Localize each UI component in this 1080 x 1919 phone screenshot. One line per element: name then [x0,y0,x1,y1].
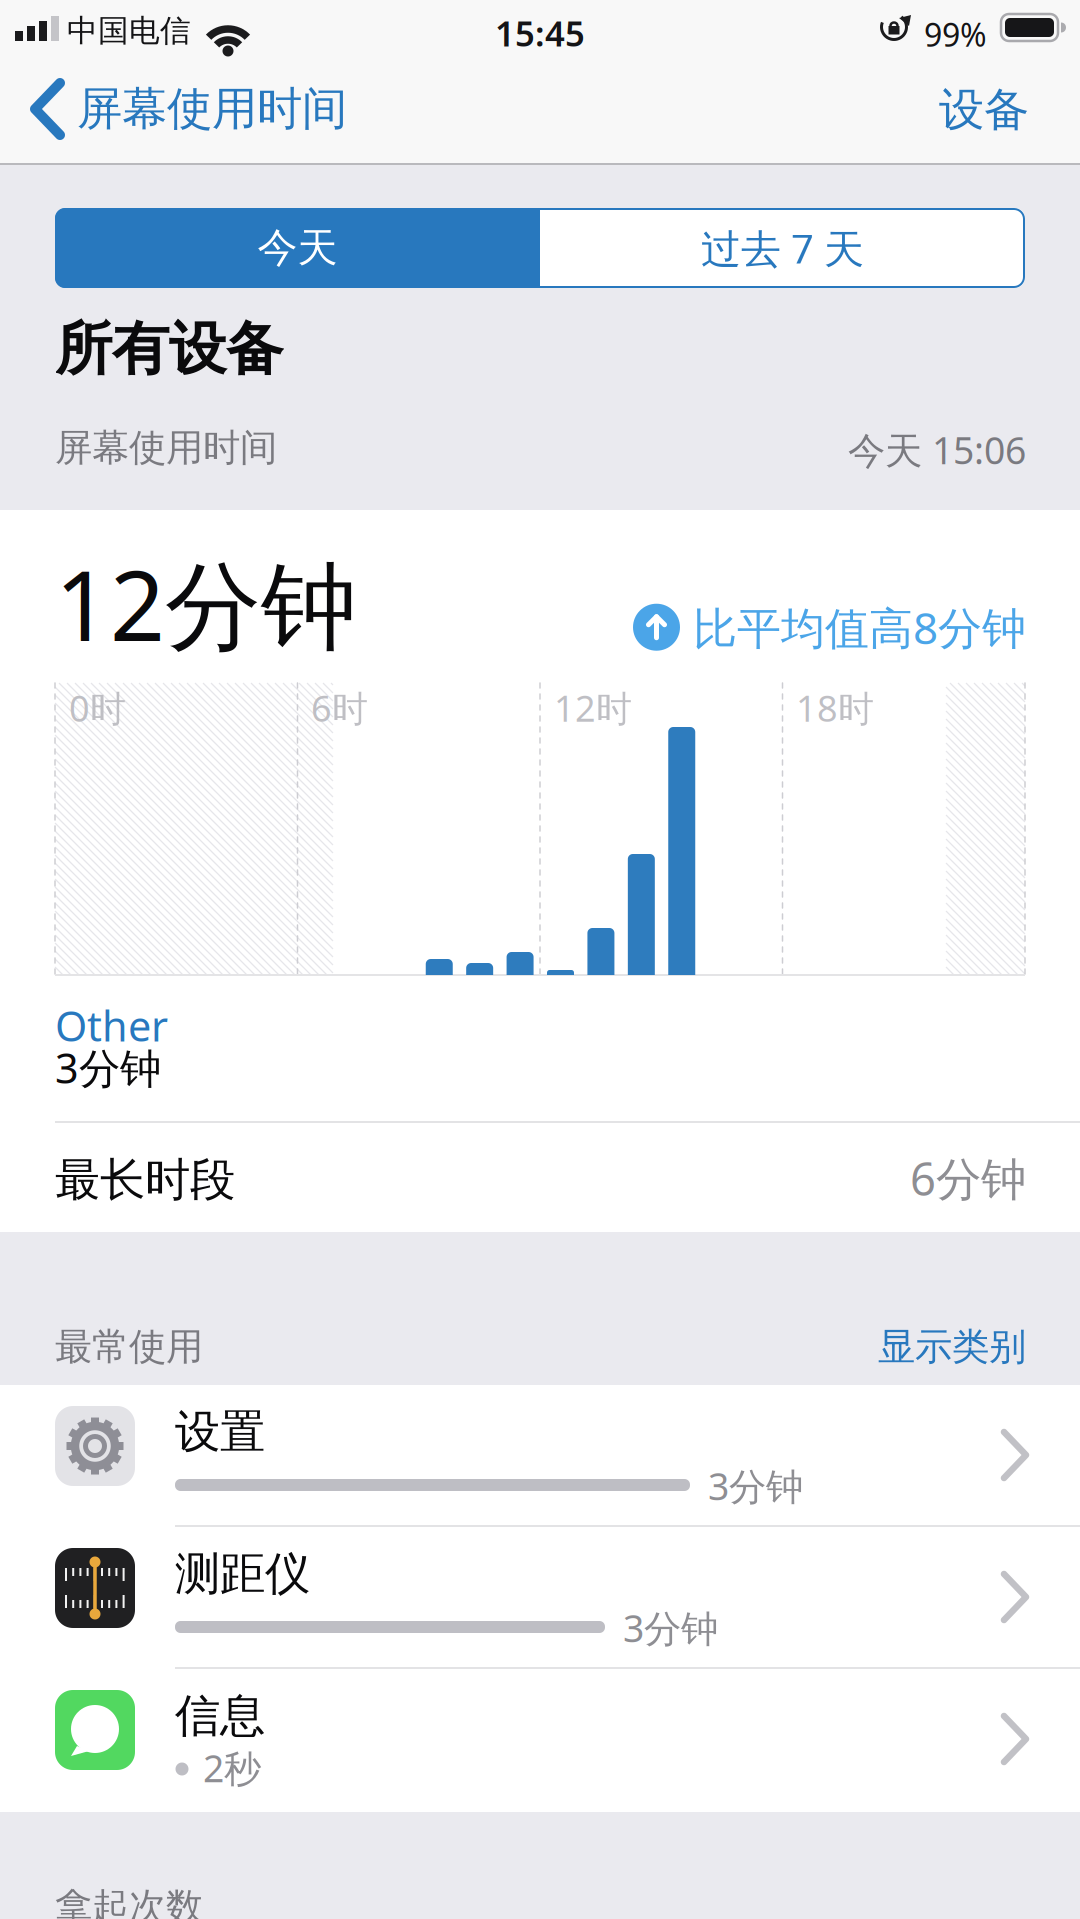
staticText: 比平均值高8分钟 [693,598,1026,656]
staticText: 2秒 [203,1743,261,1793]
staticText: Other [55,998,168,1053]
staticText: 过去 7 天 [701,221,864,274]
staticText: 99% [924,13,987,55]
staticText: 测距仪 [175,1546,310,1602]
button[interactable]: 返回屏幕使用时间 [0,62,317,124]
button[interactable]: 测距仪 [0,1527,1080,1669]
staticText: 最长时段 [55,1152,235,1208]
staticText: 3分钟 [708,1461,803,1511]
button[interactable]: 今天 [55,208,540,288]
staticText: 12时 [554,684,632,732]
staticText: 最常使用 [55,1324,203,1370]
staticText: 设备 [939,82,1029,138]
staticText: 3分钟 [55,1040,161,1095]
staticText: 屏幕使用时间 [77,81,347,137]
button[interactable]: 设置 [0,1385,1080,1527]
staticText: 15:45 [495,10,585,56]
staticText: 显示类别 [878,1324,1026,1370]
staticText: 中国电信 [67,12,191,50]
staticText: 3分钟 [623,1603,718,1653]
staticText: 拿起次数 [55,1884,203,1919]
staticText: 6时 [311,684,368,732]
button[interactable]: 显示类别 [878,1324,1026,1370]
staticText: 信息 [175,1688,265,1744]
staticText: 18时 [796,684,874,732]
staticText: 0时 [69,684,126,732]
staticText: 今天 15:06 [848,425,1026,475]
staticText: 设置 [175,1404,265,1460]
button[interactable]: Other [55,998,168,1053]
button[interactable]: 信息 [0,1669,1080,1811]
staticText: 今天 [257,223,337,272]
staticText: 所有设备 [55,314,283,384]
button[interactable]: 过去 7 天 [540,208,1025,288]
staticText: 6分钟 [910,1148,1026,1208]
button[interactable]: 设备 [939,82,1029,138]
staticText: 12分钟 [55,540,357,667]
staticText: 屏幕使用时间 [55,425,277,471]
